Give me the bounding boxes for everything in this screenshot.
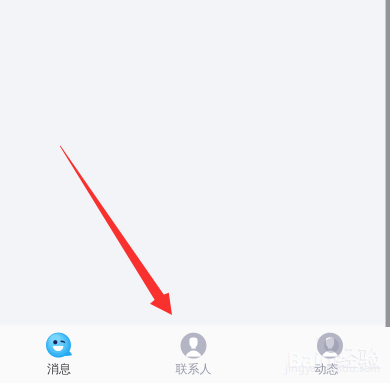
staticText: jingyan.baidu.com (285, 361, 380, 375)
button[interactable]: 动态 (282, 329, 370, 379)
staticText: 消息 (47, 362, 71, 376)
staticText: 经验 (336, 345, 382, 373)
staticText: 经验 (336, 345, 382, 372)
button[interactable]: 联系人 (149, 329, 237, 379)
staticText: 联系人 (175, 362, 211, 376)
staticText: Baidu (287, 345, 347, 373)
button[interactable]: 消息 (15, 329, 103, 379)
staticText: Baidu (288, 344, 348, 373)
staticText: 动态 (314, 362, 338, 376)
